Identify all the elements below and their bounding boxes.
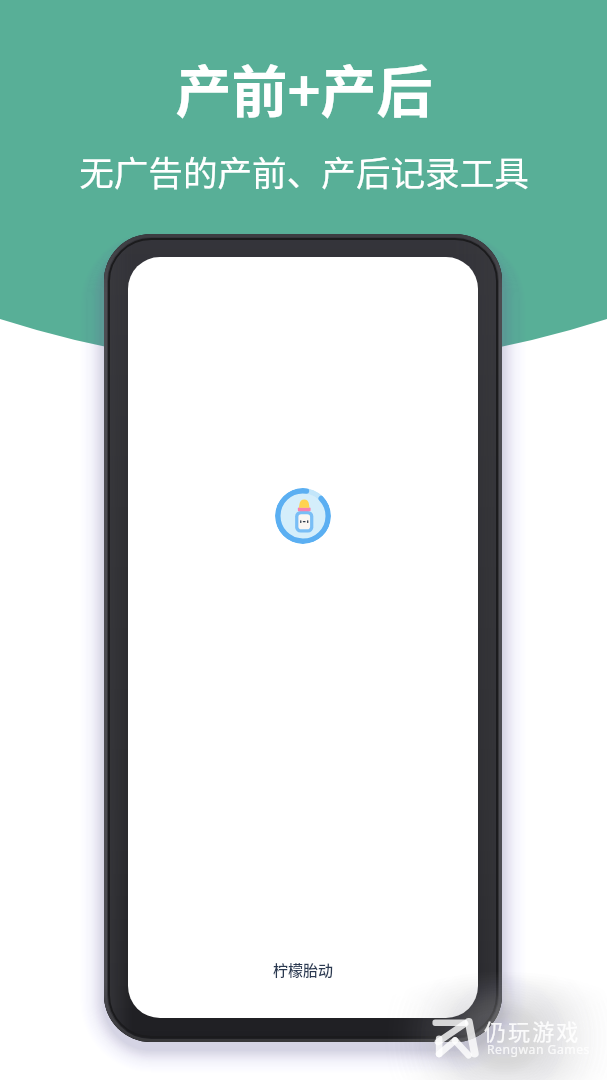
button[interactable]: 柠檬胎动 应用图标: [275, 488, 331, 544]
staticText: Rengwan Games: [487, 1041, 590, 1058]
staticText: 仍玩游戏: [484, 1014, 581, 1046]
staticText: 柠檬胎动: [273, 959, 334, 981]
button[interactable]: 柠檬胎动: [265, 952, 342, 988]
staticText: 无广告的产前、产后记录工具: [79, 146, 529, 196]
staticText: 产前+产后: [175, 47, 433, 128]
